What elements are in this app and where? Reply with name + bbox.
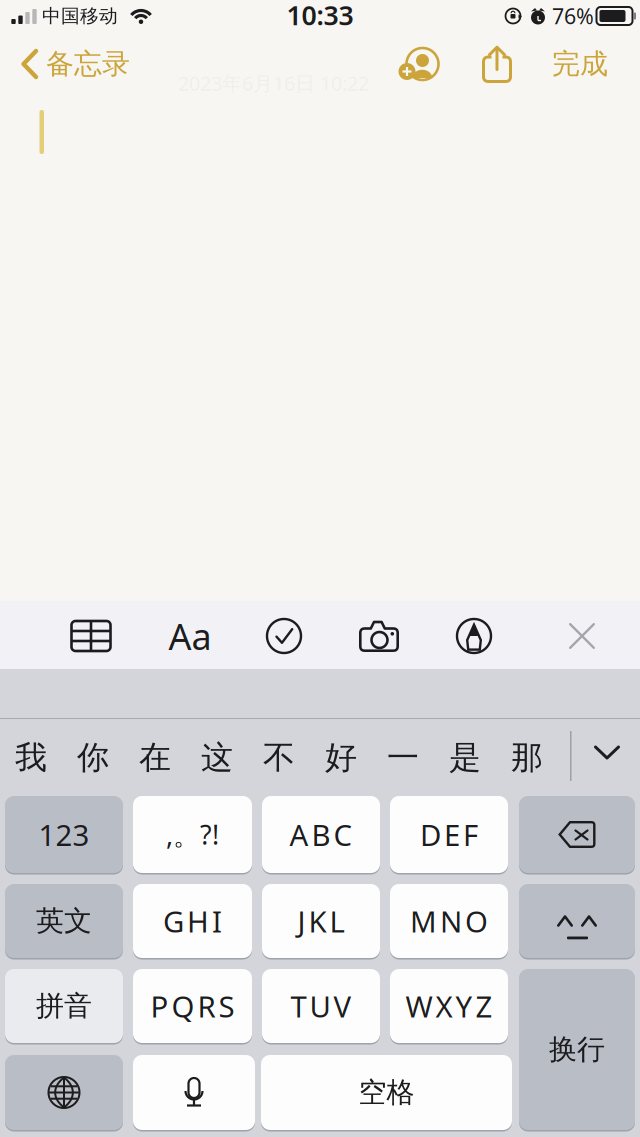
button[interactable]: 一: [372, 719, 434, 796]
button[interactable]: Share: [468, 36, 526, 92]
button[interactable]: Camera: [340, 602, 418, 670]
staticText: 不: [263, 738, 295, 777]
button[interactable]: Add People: [390, 36, 448, 92]
staticText: T U V: [290, 986, 351, 1025]
button[interactable]: 我: [0, 719, 62, 796]
button[interactable]: 那: [496, 719, 558, 796]
staticText: 我: [15, 738, 47, 777]
button[interactable]: W X Y Z: [390, 969, 508, 1045]
staticText: 英文: [36, 904, 92, 938]
staticText: 10:33: [286, 0, 353, 33]
button[interactable]: A B C: [262, 796, 380, 875]
staticText: 拼音: [36, 989, 92, 1023]
staticText: M N O: [410, 901, 488, 940]
staticText: 76%: [552, 2, 594, 30]
button[interactable]: Checklist: [245, 602, 323, 670]
button[interactable]: Table: [52, 602, 130, 670]
staticText: G H I: [163, 901, 222, 940]
button[interactable]: T U V: [262, 969, 380, 1045]
button[interactable]: 英文: [5, 884, 123, 960]
button[interactable]: 这: [186, 719, 248, 796]
button[interactable]: Switch Keyboard: [5, 1055, 123, 1132]
button[interactable]: 好: [310, 719, 372, 796]
staticText: 在: [139, 738, 171, 777]
button[interactable]: D E F: [390, 796, 508, 875]
button[interactable]: 换行: [519, 969, 635, 1132]
staticText: J K L: [297, 901, 344, 940]
staticText: A B C: [289, 815, 352, 854]
staticText: 这: [201, 738, 233, 777]
button[interactable]: G H I: [133, 884, 252, 960]
button[interactable]: ,。?!: [133, 796, 252, 875]
staticText: 一: [387, 738, 419, 777]
button[interactable]: 你: [62, 719, 124, 796]
staticText: 那: [511, 738, 543, 777]
button[interactable]: 不: [248, 719, 310, 796]
button[interactable]: Dictation: [133, 1055, 255, 1132]
button[interactable]: M N O: [390, 884, 508, 960]
staticText: Aa: [168, 612, 211, 660]
button[interactable]: J K L: [262, 884, 380, 960]
staticText: 空格: [358, 1075, 414, 1110]
staticText: 中国移动: [42, 4, 118, 27]
button[interactable]: 在: [124, 719, 186, 796]
button[interactable]: 备忘录: [0, 36, 142, 92]
button[interactable]: 是: [434, 719, 496, 796]
staticText: 换行: [549, 1032, 605, 1067]
button[interactable]: Emoticon: [519, 884, 635, 960]
button[interactable]: 123: [5, 796, 123, 875]
button[interactable]: 拼音: [5, 969, 123, 1045]
staticText: D E F: [420, 815, 478, 854]
button[interactable]: 完成: [542, 36, 618, 92]
staticText: 好: [325, 738, 357, 777]
staticText: 你: [77, 738, 109, 777]
staticText: P Q R S: [150, 986, 234, 1025]
button[interactable]: Format: [151, 602, 229, 670]
button[interactable]: Collapse: [577, 714, 637, 791]
staticText: ,。?!: [166, 817, 219, 852]
staticText: 完成: [552, 47, 608, 81]
staticText: 备忘录: [46, 47, 130, 81]
button[interactable]: Close: [543, 602, 621, 670]
staticText: 2023年6月16日 10:22: [178, 70, 369, 96]
staticText: W X Y Z: [405, 986, 492, 1025]
staticText: 123: [38, 815, 89, 854]
button[interactable]: 空格: [261, 1055, 512, 1132]
button[interactable]: Delete: [519, 796, 635, 875]
staticText: 是: [449, 738, 481, 777]
button[interactable]: P Q R S: [133, 969, 252, 1045]
button[interactable]: Markup: [435, 602, 513, 670]
